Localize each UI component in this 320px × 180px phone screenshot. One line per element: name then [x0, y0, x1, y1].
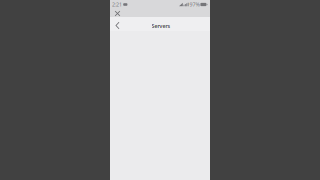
staticText: 97% [190, 1, 200, 8]
staticText: 2:21 [112, 1, 122, 8]
staticText: Servers [151, 22, 170, 30]
button[interactable]: Close [111, 8, 123, 17]
button[interactable]: Back [111, 15, 123, 32]
